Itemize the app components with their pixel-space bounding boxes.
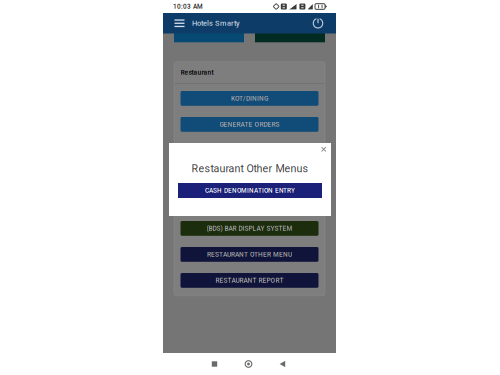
staticText: RESTAURANT OTHER MENU: [207, 251, 292, 258]
button[interactable]: RESTAURANT REPORT: [180, 273, 318, 288]
button[interactable]: Power: [309, 13, 327, 33]
button[interactable]: Recents: [197, 353, 231, 375]
staticText: GENERATE ORDERS: [219, 121, 279, 128]
button[interactable]: (BDS) BAR DISPLAY SYSTEM: [180, 221, 318, 236]
staticText: CASH DENOMINATION ENTRY: [205, 187, 295, 194]
staticText: RESTAURANT REPORT: [215, 277, 283, 284]
button[interactable]: RESTAURANT OTHER MENU: [180, 247, 318, 262]
staticText: KOT/DINING: [231, 95, 268, 102]
button[interactable]: Close: [318, 144, 329, 155]
button[interactable]: Home: [231, 353, 265, 375]
staticText: Restaurant: [180, 69, 213, 76]
button[interactable]: KOT/DINING: [180, 91, 318, 106]
staticText: (BDS) BAR DISPLAY SYSTEM: [206, 225, 292, 232]
button[interactable]: (KDS) KITCHEN DISPLAY SYSTEM: [180, 195, 318, 210]
button[interactable]: Menu: [171, 13, 188, 33]
staticText: Hotels Smarty: [192, 19, 240, 28]
staticText: Restaurant Other Menus: [191, 162, 308, 175]
button[interactable]: CASH DENOMINATION ENTRY: [178, 183, 322, 198]
button[interactable]: Back: [265, 353, 299, 375]
staticText: 10:03 AM: [173, 3, 203, 10]
button[interactable]: DINE IN ORDER LIST: [180, 169, 318, 184]
button[interactable]: GENERATE ORDERS: [180, 117, 318, 132]
